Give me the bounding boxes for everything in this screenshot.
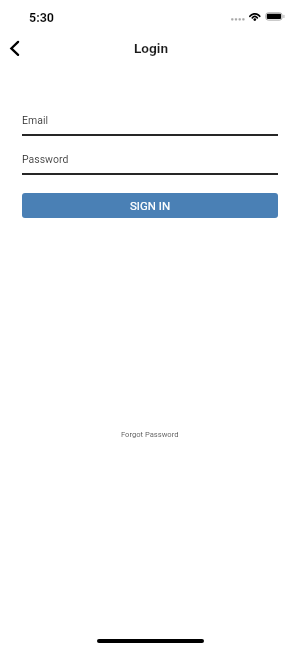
button[interactable]: Back (0, 36, 32, 65)
button[interactable]: SIGN IN (22, 193, 278, 218)
button[interactable]: Forgot Password (113, 426, 187, 443)
staticText: SIGN IN (130, 199, 171, 212)
button[interactable]: Email (22, 114, 278, 136)
staticText: Forgot Password (121, 430, 179, 439)
staticText: Login (134, 40, 169, 56)
staticText: Email (22, 114, 48, 126)
staticText: Password (22, 153, 69, 165)
button[interactable]: Password (22, 153, 278, 175)
staticText: 5:30 (29, 10, 55, 25)
